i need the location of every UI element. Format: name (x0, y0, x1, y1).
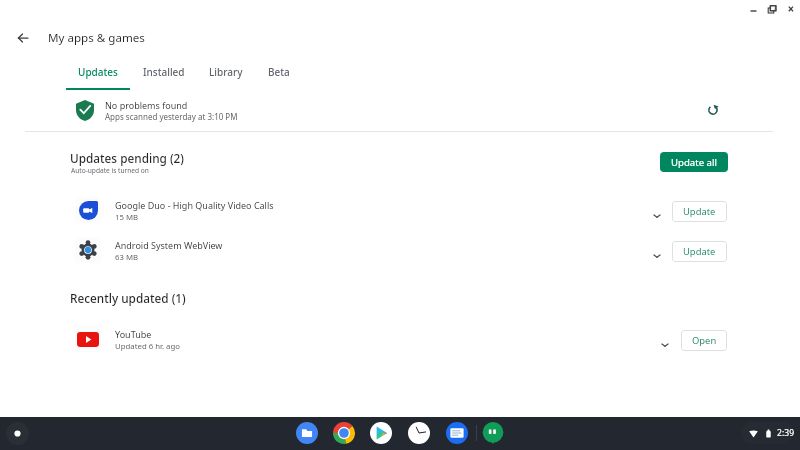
button[interactable]: Close (774, 0, 800, 22)
button[interactable]: Back (9, 24, 36, 51)
button[interactable]: Hangouts (480, 420, 506, 446)
staticText: No problems found (105, 99, 188, 111)
staticText: Updates pending (2) (70, 150, 185, 166)
staticText: Library (209, 65, 243, 79)
staticText: 2:39 (777, 427, 794, 439)
staticText: Google Duo - High Quality Video Calls (115, 199, 274, 211)
staticText: Recently updated (1) (70, 290, 186, 306)
button[interactable]: Installed (131, 60, 196, 90)
staticText: Updates (78, 65, 118, 79)
button[interactable]: Minimize (733, 0, 773, 22)
button[interactable]: Clock (406, 420, 432, 446)
button[interactable]: Refresh (699, 96, 727, 124)
button[interactable]: Update all (660, 152, 728, 172)
button[interactable]: Play Store (368, 420, 394, 446)
button[interactable]: Maximize (752, 0, 790, 22)
staticText: Update (683, 205, 716, 218)
staticText: 15 MB (115, 212, 139, 223)
staticText: Updated 6 hr. ago (115, 341, 180, 352)
button[interactable]: Library (196, 60, 256, 90)
staticText: Installed (143, 65, 185, 79)
button[interactable]: Beta (256, 60, 302, 90)
button[interactable]: Show details (654, 334, 676, 356)
button[interactable]: Update (672, 201, 727, 222)
staticText: Open (692, 334, 717, 347)
button[interactable] (25, 321, 773, 359)
staticText: My apps & games (48, 30, 145, 46)
staticText: Update all (671, 156, 717, 169)
staticText: Beta (268, 65, 290, 79)
staticText: 63 MB (115, 252, 139, 263)
staticText: YouTube (115, 328, 152, 340)
button[interactable] (25, 232, 773, 270)
button[interactable]: Chrome (331, 420, 357, 446)
button[interactable]: Open (681, 330, 727, 351)
button[interactable]: Launcher (4, 420, 30, 446)
staticText: Apps scanned yesterday at 3:10 PM (105, 111, 238, 122)
button[interactable]: Show details (646, 245, 668, 267)
button[interactable]: System status (741, 422, 794, 444)
button[interactable] (25, 192, 773, 230)
staticText: Update (683, 245, 716, 258)
button[interactable]: Update (672, 241, 727, 262)
button[interactable]: Show details (646, 205, 668, 227)
button[interactable]: Files (294, 420, 320, 446)
staticText: Android System WebView (115, 239, 223, 251)
button[interactable]: Updates (66, 60, 130, 90)
staticText: Auto-update is turned on (71, 166, 149, 175)
button[interactable]: Messages (444, 420, 470, 446)
